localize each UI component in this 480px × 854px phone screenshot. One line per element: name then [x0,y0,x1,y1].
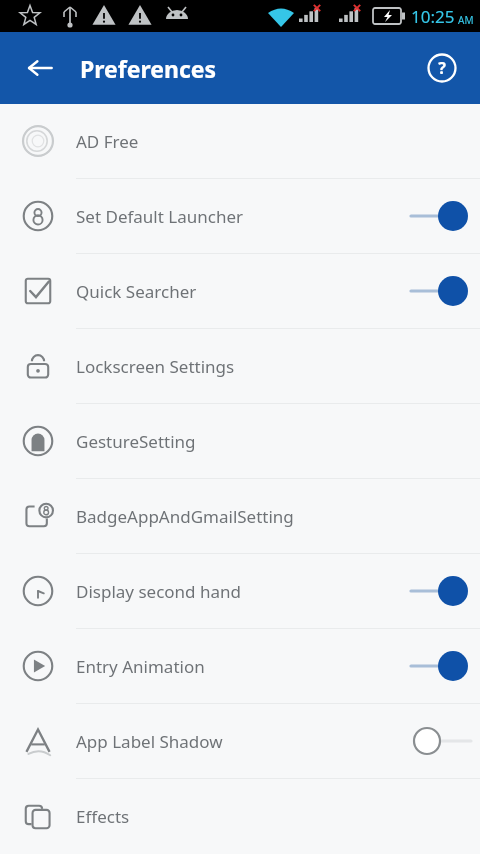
staticText: BadgeAppAndGmailSetting [76,505,294,528]
staticText: AD Free [76,130,139,153]
button[interactable]: App Label Shadow [0,704,480,778]
button[interactable]: Back [16,44,64,92]
staticText: Set Default Launcher [76,205,244,228]
staticText: Lockscreen Settings [76,355,235,378]
staticText: AM [458,13,474,27]
staticText: GestureSetting [76,430,196,453]
staticText: ? [438,57,446,79]
button[interactable]: Help [418,44,466,92]
staticText: Display second hand [76,580,241,603]
button[interactable]: Display second hand [0,554,480,628]
button[interactable]: Entry Animation [0,629,480,703]
staticText: Preferences [80,53,217,84]
button[interactable]: GestureSetting [0,404,480,478]
staticText: Effects [76,805,130,828]
staticText: Quick Searcher [76,280,197,303]
button[interactable]: Effects [0,779,480,853]
staticText: 10:25 [411,5,455,28]
button[interactable]: Quick Searcher [0,254,480,328]
staticText: App Label Shadow [76,730,223,753]
button[interactable]: Set Default Launcher [0,179,480,253]
button[interactable]: AD Free [0,104,480,178]
button[interactable]: Lockscreen Settings [0,329,480,403]
staticText: Entry Animation [76,655,205,678]
button[interactable]: BadgeAppAndGmailSetting [0,479,480,553]
